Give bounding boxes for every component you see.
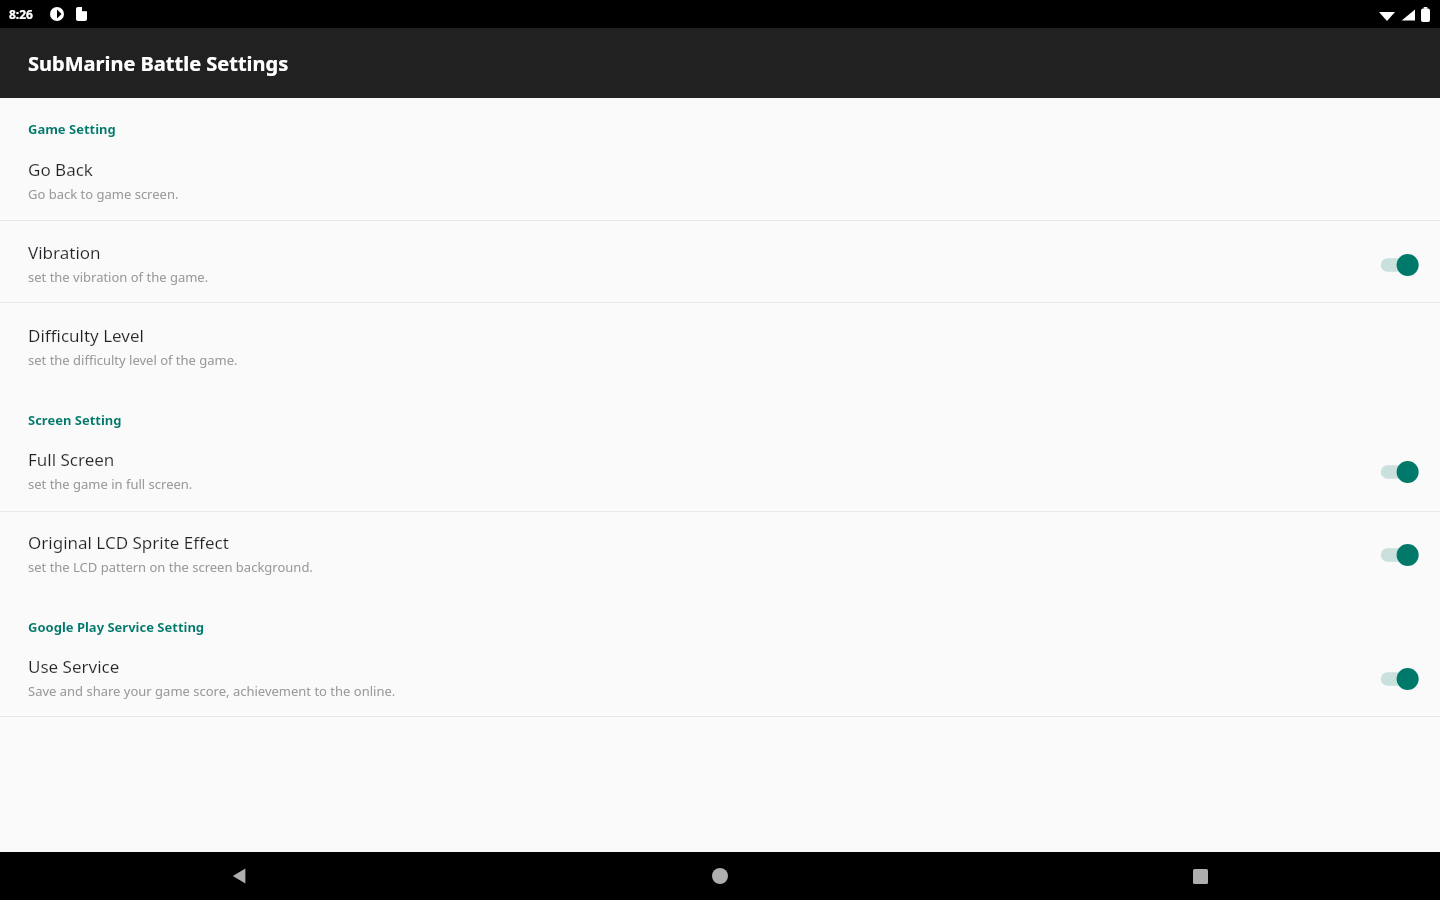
button[interactable]: Use Service switch, on [1376, 663, 1424, 695]
staticText: Google Play Service Setting [28, 618, 205, 636]
button[interactable]: Original LCD Sprite Effect switch, on [1376, 539, 1424, 571]
staticText: Go Back [28, 158, 93, 181]
staticText: Full Screen [28, 448, 115, 471]
staticText: Go back to game screen. [28, 185, 179, 203]
staticText: Game Setting [28, 120, 116, 138]
button[interactable]: Original LCD Sprite Effect [0, 531, 1440, 585]
button[interactable]: Recent apps [960, 852, 1440, 900]
staticText: set the difficulty level of the game. [28, 351, 238, 369]
staticText: SubMarine Battle Settings [28, 50, 289, 77]
staticText: Original LCD Sprite Effect [28, 531, 229, 554]
button[interactable]: Full Screen switch, on [1376, 456, 1424, 488]
staticText: 8:26 [9, 6, 33, 22]
button[interactable]: Go Back [0, 158, 1440, 212]
staticText: Vibration [28, 241, 101, 264]
button[interactable]: Home [480, 852, 960, 900]
staticText: set the vibration of the game. [28, 268, 209, 286]
staticText: Save and share your game score, achievem… [28, 682, 396, 700]
button[interactable]: Vibration [0, 241, 1440, 295]
button[interactable]: Vibration switch, on [1376, 249, 1424, 281]
button[interactable]: Difficulty Level [0, 324, 1440, 378]
button[interactable]: Use Service [0, 655, 1440, 709]
staticText: set the LCD pattern on the screen backgr… [28, 558, 313, 576]
staticText: set the game in full screen. [28, 475, 193, 493]
staticText: Use Service [28, 655, 120, 678]
staticText: Difficulty Level [28, 324, 144, 347]
button[interactable]: Back [0, 852, 480, 900]
button[interactable]: Full Screen [0, 448, 1440, 502]
staticText: Screen Setting [28, 411, 122, 429]
